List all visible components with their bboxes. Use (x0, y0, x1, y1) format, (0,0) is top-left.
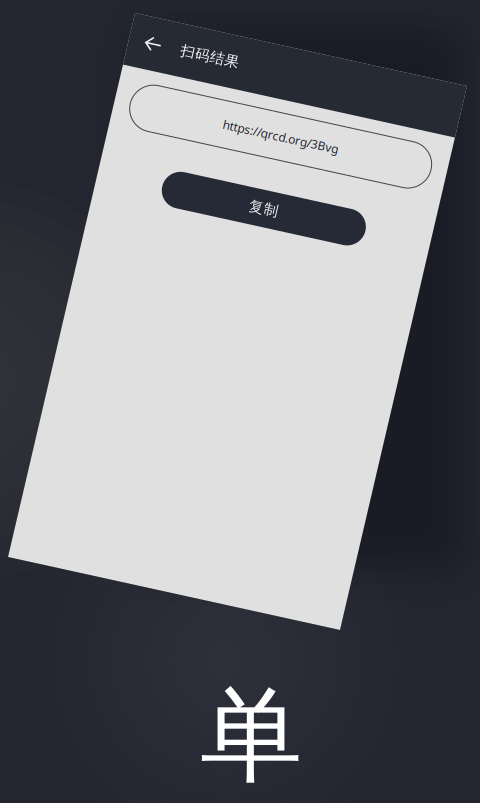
staticText: https://qrcd.org/3Bvg (246, 94, 364, 110)
staticText: 扫码结果 (188, 30, 248, 48)
button[interactable]: Back (135, 18, 188, 60)
button[interactable]: 复制 (201, 158, 409, 195)
staticText: 单 (200, 673, 303, 799)
staticText: 复制 (290, 167, 320, 185)
